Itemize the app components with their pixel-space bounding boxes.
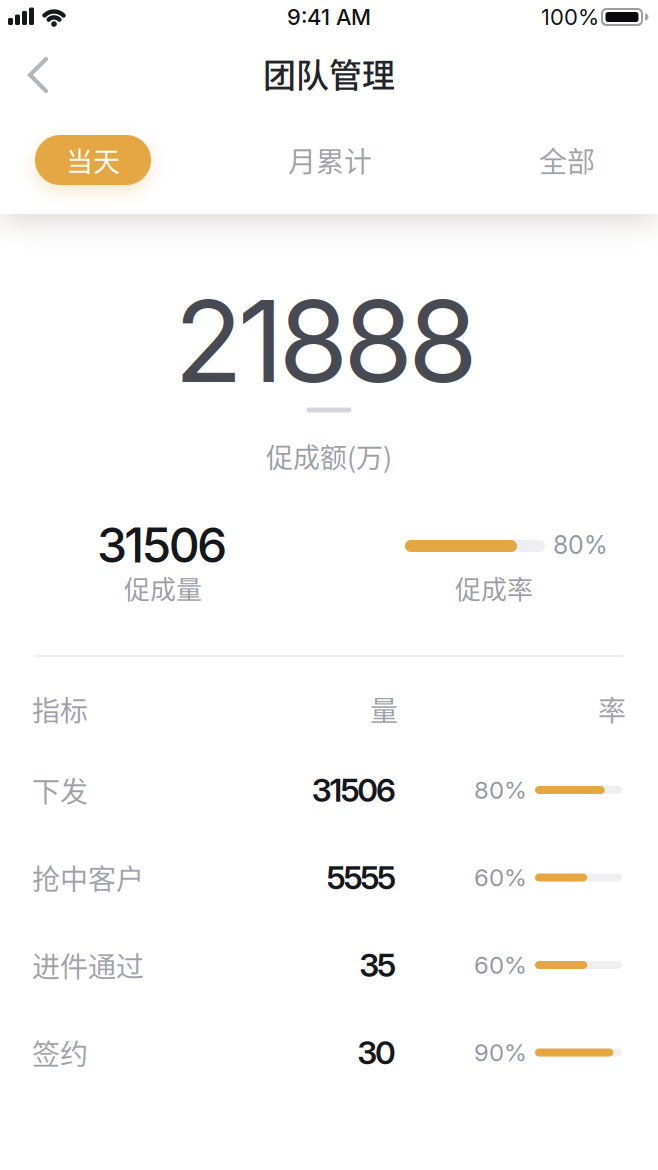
staticText: 月累计 xyxy=(288,140,372,180)
button[interactable]: 全部 xyxy=(507,132,627,188)
staticText: 80% xyxy=(553,530,608,560)
staticText: 团队管理 xyxy=(263,49,395,97)
staticText: 全部 xyxy=(539,140,595,180)
staticText: 30 xyxy=(357,1033,396,1072)
button[interactable]: 月累计 xyxy=(260,132,400,188)
staticText: 签约 xyxy=(32,1032,88,1073)
staticText: 抢中客户 xyxy=(32,857,144,898)
staticText: 60% xyxy=(474,863,527,892)
button[interactable]: Back xyxy=(0,0,78,112)
staticText: 量 xyxy=(370,689,398,729)
staticText: 21888 xyxy=(174,273,478,409)
staticText: 35 xyxy=(359,946,396,984)
staticText: 率 xyxy=(598,689,626,729)
staticText: 60% xyxy=(474,950,527,979)
staticText: 80% xyxy=(474,775,527,804)
staticText: 指标 xyxy=(32,689,88,729)
staticText: 促成额(万) xyxy=(266,436,392,476)
staticText: 进件通过 xyxy=(32,945,144,985)
staticText: 促成率 xyxy=(455,569,533,607)
staticText: 5555 xyxy=(327,858,396,897)
button[interactable]: 当天 xyxy=(35,135,151,185)
staticText: 下发 xyxy=(32,770,88,810)
staticText: 31506 xyxy=(97,516,227,574)
staticText: 90% xyxy=(474,1038,527,1067)
staticText: 当天 xyxy=(66,140,120,180)
staticText: 9:41 AM xyxy=(287,4,371,30)
staticText: 100% xyxy=(541,4,599,30)
staticText: 促成量 xyxy=(124,569,202,607)
staticText: 31506 xyxy=(312,771,396,809)
